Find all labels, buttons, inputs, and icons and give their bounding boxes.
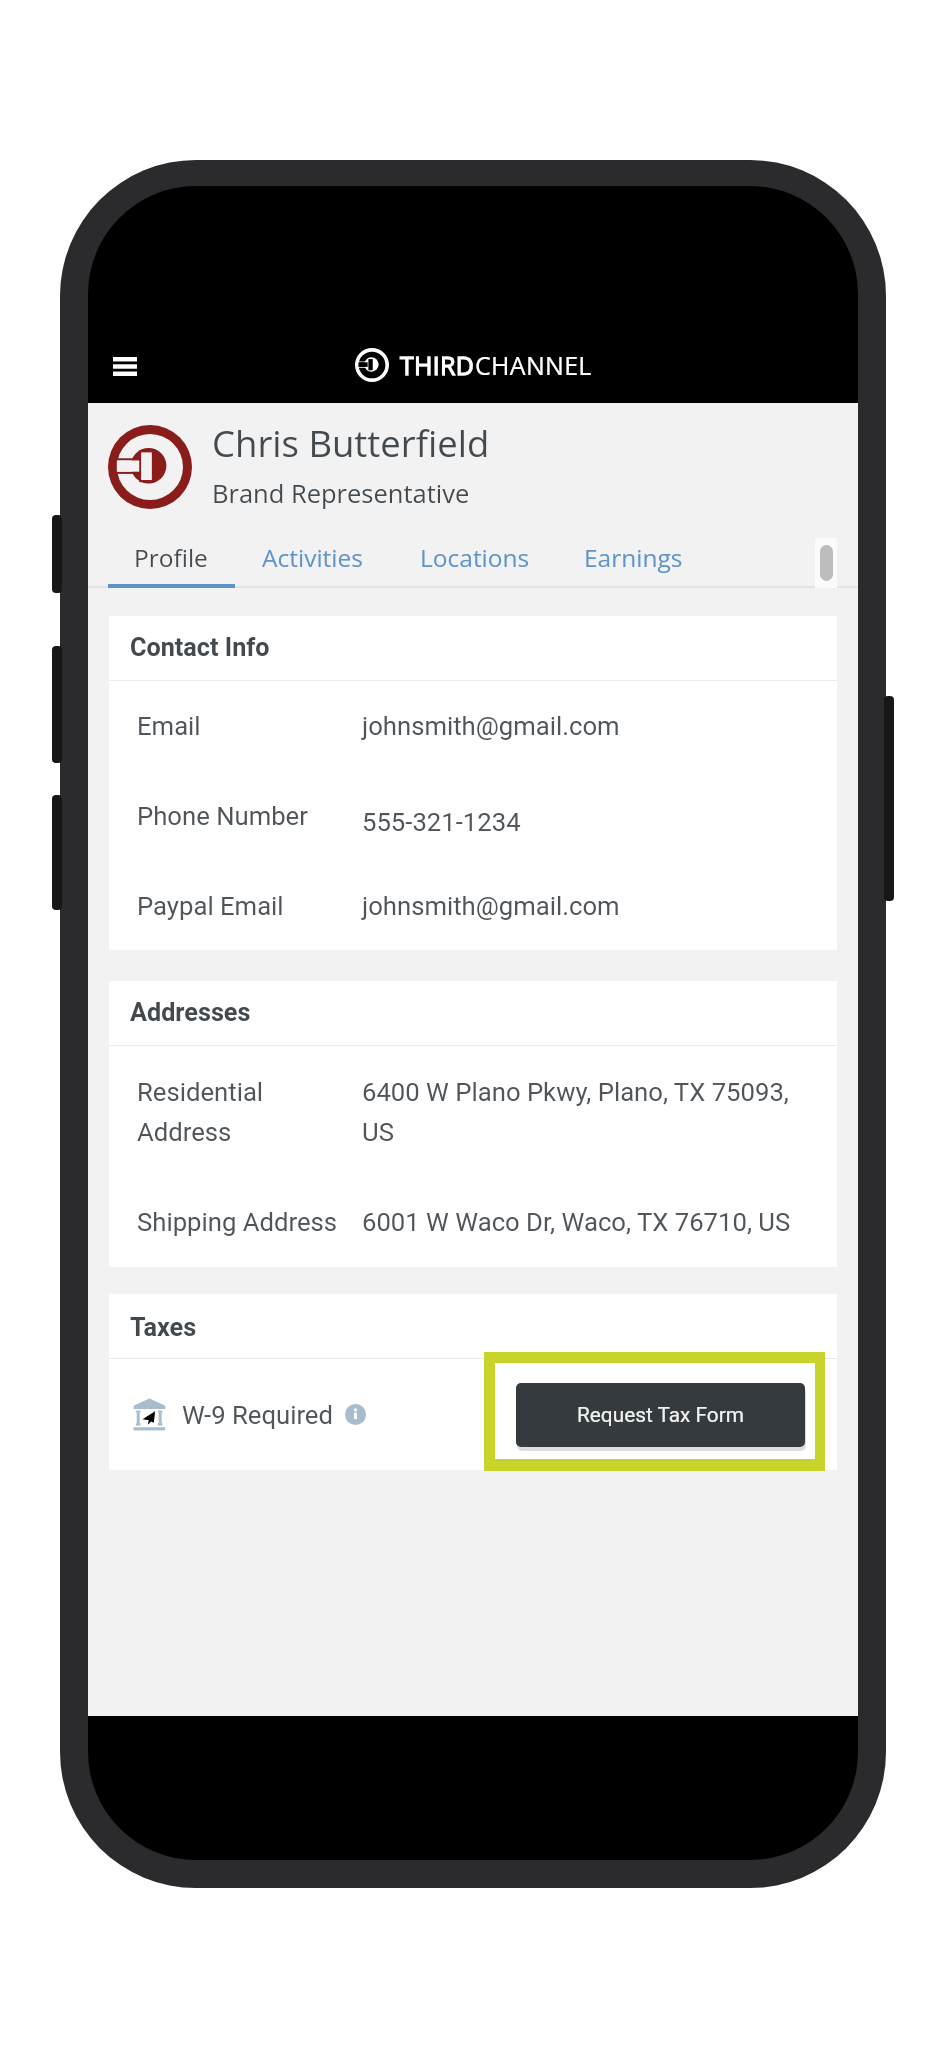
button[interactable]: Profile xyxy=(115,532,227,582)
staticText: Profile xyxy=(134,541,208,574)
staticText: Phone Number xyxy=(137,801,308,831)
staticText: Activities xyxy=(262,541,363,574)
staticText: 6001 W Waco Dr, Waco, TX 76710, US xyxy=(362,1207,791,1237)
button[interactable]: Request Tax Form xyxy=(516,1383,805,1447)
staticText: Earnings xyxy=(584,541,683,574)
staticText: Addresses xyxy=(130,998,251,1028)
button[interactable]: Open navigation menu xyxy=(101,342,149,390)
staticText: CHANNEL xyxy=(475,348,592,382)
staticText: Taxes xyxy=(130,1313,197,1343)
staticText: johnsmith@gmail.com xyxy=(362,711,620,741)
button[interactable]: More information xyxy=(345,1404,366,1425)
button[interactable]: Earnings xyxy=(565,532,702,582)
button[interactable]: Activities xyxy=(242,532,383,582)
staticText: Address xyxy=(137,1117,232,1147)
staticText: Request Tax Form xyxy=(577,1403,744,1427)
button[interactable]: Locations xyxy=(399,532,550,582)
staticText: johnsmith@gmail.com xyxy=(362,891,620,921)
staticText: THIRD xyxy=(400,348,475,382)
staticText: Brand Representative xyxy=(212,476,470,511)
staticText: Locations xyxy=(420,541,530,574)
staticText: Contact Info xyxy=(130,633,270,663)
staticText: Residential xyxy=(137,1077,264,1107)
staticText: Email xyxy=(137,711,201,741)
staticText: Shipping Address xyxy=(137,1207,338,1237)
staticText: Chris Butterfield xyxy=(212,418,490,468)
staticText: US xyxy=(362,1117,394,1147)
staticText: 6400 W Plano Pkwy, Plano, TX 75093, xyxy=(362,1077,789,1107)
staticText: 555-321-1234 xyxy=(362,807,521,837)
staticText: W-9 Required xyxy=(182,1400,333,1430)
staticText: Paypal Email xyxy=(137,891,284,921)
